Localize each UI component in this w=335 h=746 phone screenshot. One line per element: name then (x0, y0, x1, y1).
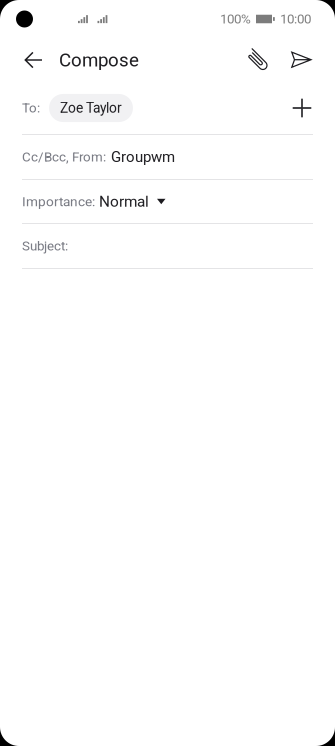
staticText: 10:00 (280, 11, 311, 27)
button[interactable]: Add recipient (285, 91, 319, 125)
button[interactable]: Attach file (240, 38, 274, 82)
staticText: Subject: (22, 238, 68, 254)
button[interactable]: Back (17, 38, 50, 82)
staticText: 100% (220, 11, 251, 27)
button[interactable]: Send (284, 38, 318, 82)
staticText: Groupwm (111, 148, 175, 166)
staticText: To: (22, 100, 40, 116)
staticText: Importance: (22, 193, 95, 209)
button[interactable]: Cc/Bcc, From: (0, 135, 335, 179)
button[interactable]: Importance: (0, 180, 335, 223)
staticText: Normal (99, 192, 149, 210)
staticText: Cc/Bcc, From: (22, 149, 106, 165)
button[interactable]: Zoe Taylor (49, 94, 133, 122)
staticText: Zoe Taylor (60, 100, 122, 116)
staticText: Compose (59, 49, 139, 71)
